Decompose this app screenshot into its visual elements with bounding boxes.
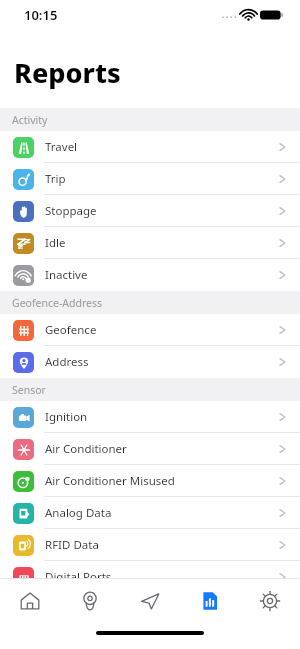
- button[interactable]: Trip: [0, 163, 300, 195]
- button[interactable]: Air Conditioner Misused: [0, 465, 300, 497]
- staticText: Air Conditioner: [45, 441, 127, 457]
- button[interactable]: Inactive: [0, 259, 300, 291]
- button[interactable]: Address: [0, 346, 300, 378]
- staticText: Travel: [45, 139, 78, 155]
- staticText: Geofence: [45, 322, 97, 338]
- button[interactable]: Travel: [0, 131, 300, 163]
- staticText: Stoppage: [45, 203, 97, 219]
- staticText: Reports: [14, 54, 121, 91]
- button[interactable]: Settings: [240, 579, 300, 623]
- button[interactable]: Places: [60, 579, 120, 623]
- staticText: Air Conditioner Misused: [45, 473, 175, 489]
- staticText: Address: [45, 354, 89, 370]
- button[interactable]: Reports: [180, 579, 240, 623]
- button[interactable]: Navigate: [120, 579, 180, 623]
- staticText: Digital Ports: [45, 569, 112, 578]
- button[interactable]: Idle: [0, 227, 300, 259]
- staticText: Trip: [45, 171, 66, 187]
- staticText: 10:15: [24, 6, 58, 24]
- button[interactable]: Air Conditioner: [0, 433, 300, 465]
- staticText: Sensor: [12, 383, 46, 397]
- staticText: Ignition: [45, 409, 88, 425]
- staticText: Analog Data: [45, 505, 112, 521]
- staticText: Activity: [12, 113, 48, 127]
- button[interactable]: Home: [0, 579, 60, 623]
- staticText: RFID Data: [45, 537, 99, 553]
- button[interactable]: RFID Data: [0, 529, 300, 561]
- button[interactable]: Stoppage: [0, 195, 300, 227]
- button[interactable]: Analog Data: [0, 497, 300, 529]
- button[interactable]: Ignition: [0, 401, 300, 433]
- button[interactable]: Digital Ports: [0, 561, 300, 578]
- staticText: Inactive: [45, 267, 88, 283]
- button[interactable]: Geofence: [0, 314, 300, 346]
- staticText: Idle: [45, 235, 66, 251]
- staticText: Geofence-Address: [12, 296, 103, 310]
